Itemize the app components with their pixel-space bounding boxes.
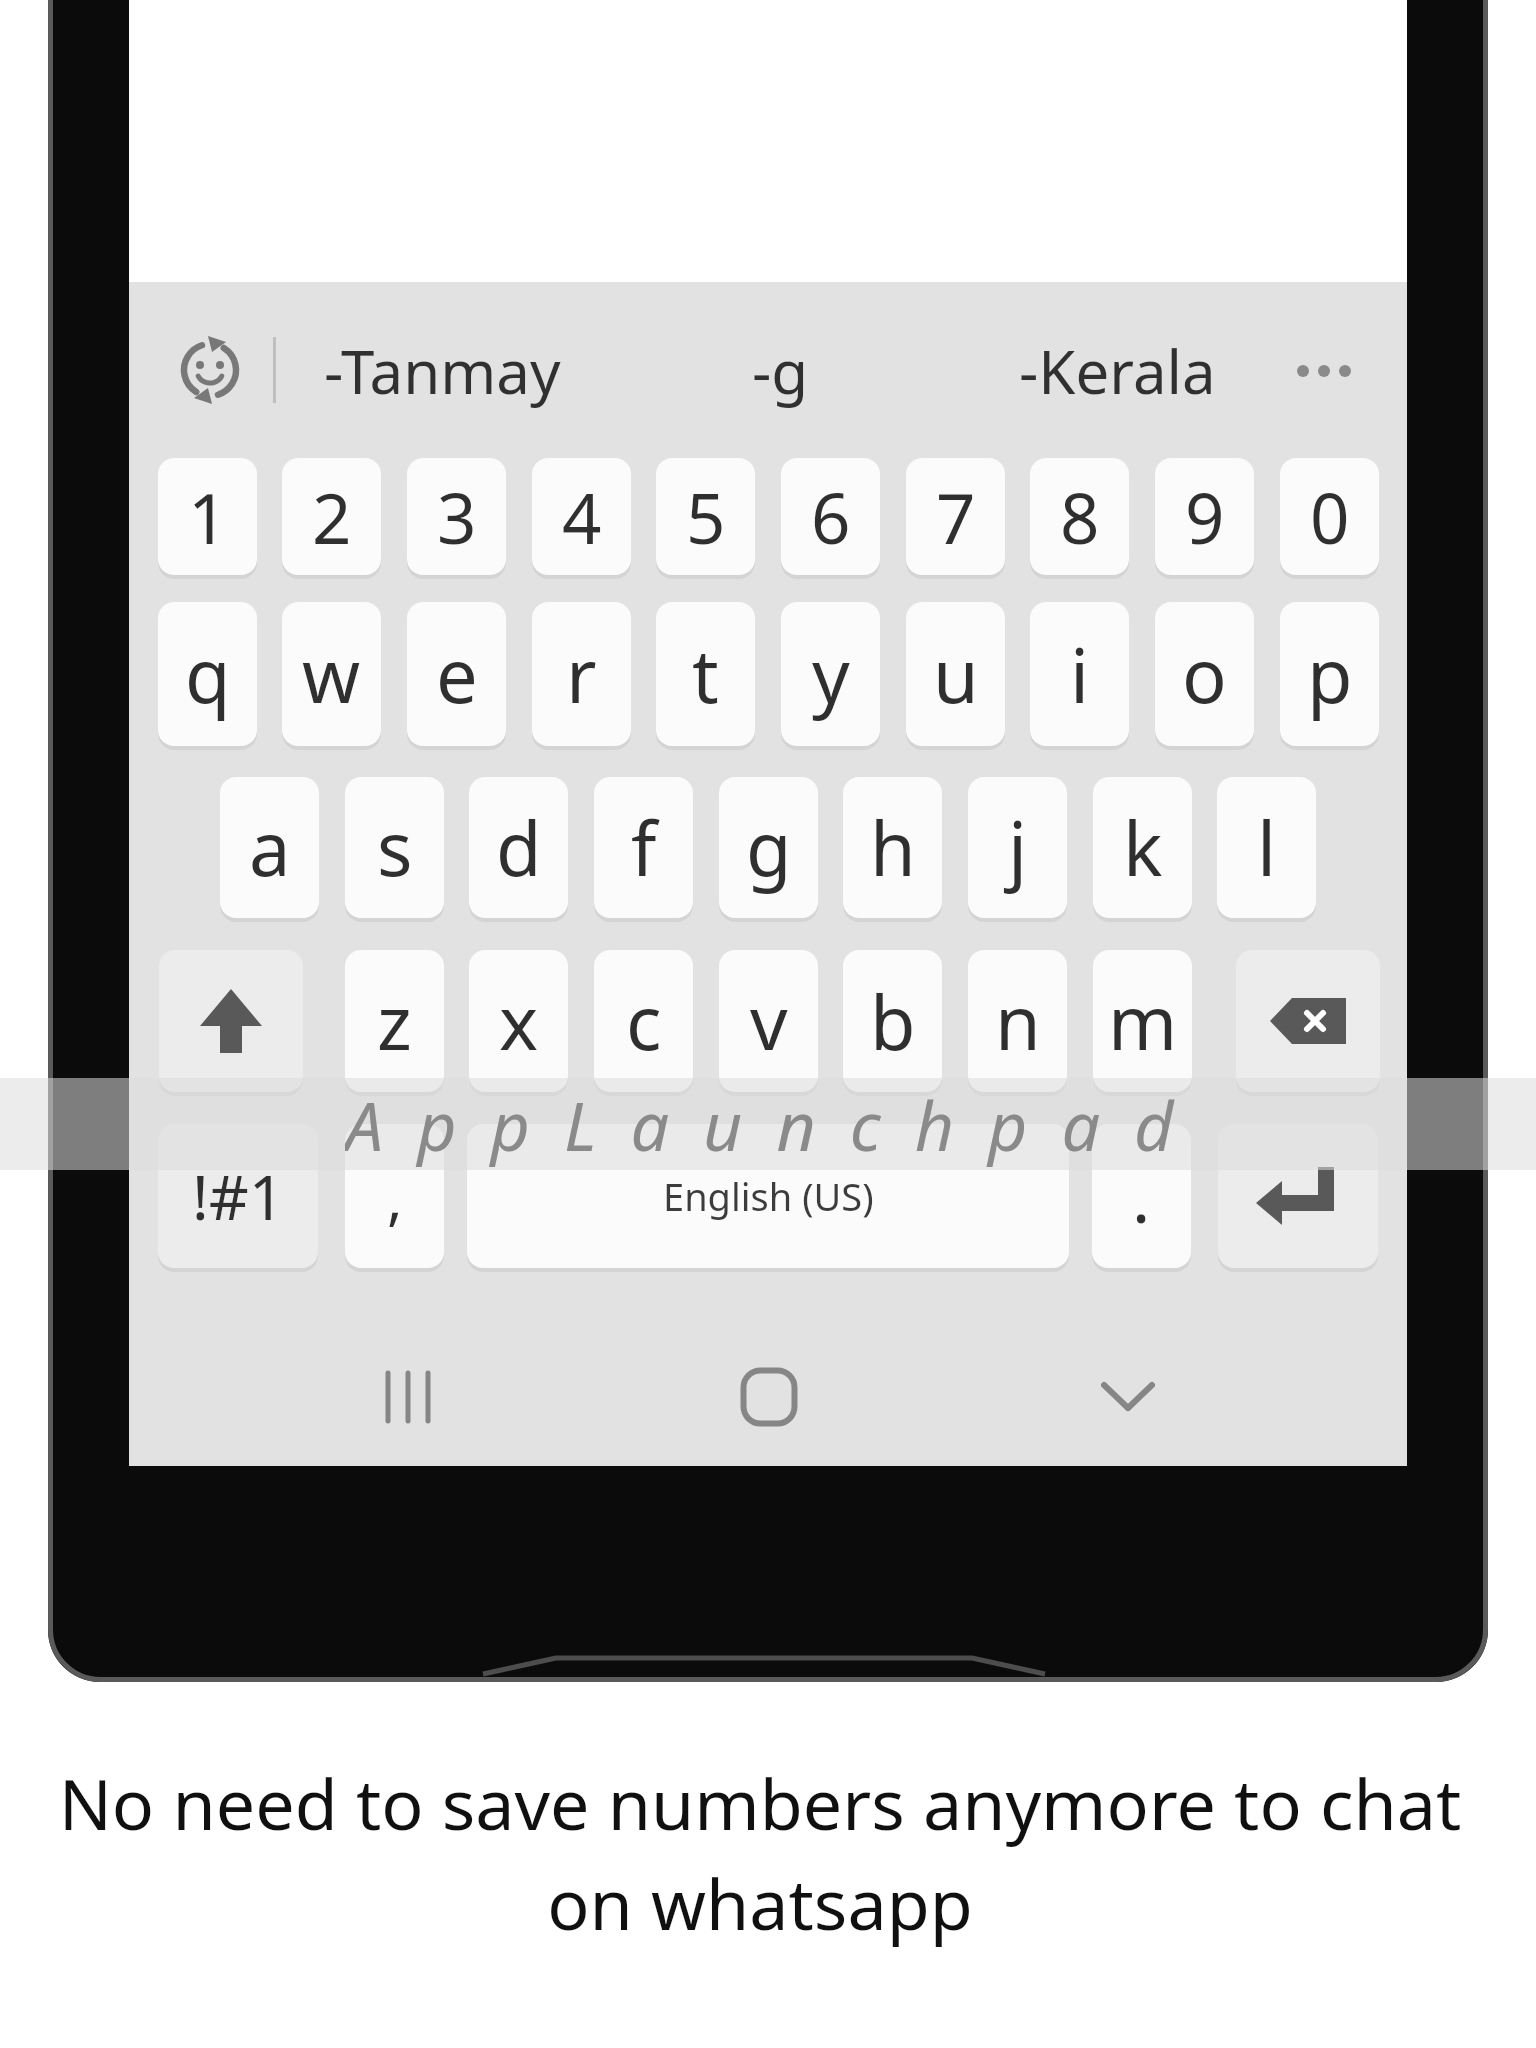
button[interactable]: 3 — [407, 458, 506, 575]
staticText: z — [377, 971, 412, 1072]
button[interactable]: f — [594, 777, 693, 918]
staticText: 1 — [188, 470, 228, 564]
staticText: n — [995, 971, 1041, 1072]
staticText: c — [626, 971, 662, 1072]
button[interactable]: 7 — [906, 458, 1005, 575]
button[interactable]: 9 — [1155, 458, 1254, 575]
staticText: v — [750, 971, 788, 1072]
staticText: y — [812, 624, 850, 725]
button[interactable]: 6 — [781, 458, 880, 575]
staticText: i — [1070, 624, 1090, 725]
staticText: 6 — [811, 470, 851, 564]
staticText: f — [631, 797, 657, 898]
staticText: l — [1257, 797, 1277, 898]
button[interactable]: p — [1280, 602, 1379, 746]
staticText: 2 — [312, 470, 352, 564]
button[interactable]: g — [719, 777, 818, 918]
staticText: , — [387, 1157, 403, 1236]
button[interactable] — [1068, 1347, 1188, 1447]
button[interactable]: t — [656, 602, 755, 746]
staticText: a — [249, 797, 291, 898]
button[interactable]: z — [345, 950, 444, 1092]
button[interactable] — [1236, 950, 1380, 1092]
button[interactable]: d — [469, 777, 568, 918]
button[interactable] — [348, 1347, 468, 1447]
button[interactable]: y — [781, 602, 880, 746]
staticText: q — [185, 624, 231, 725]
button[interactable] — [168, 328, 252, 412]
staticText: 4 — [562, 470, 602, 564]
button[interactable]: English (US) — [467, 1124, 1069, 1268]
staticText: -Kerala — [1019, 330, 1216, 412]
button[interactable]: h — [843, 777, 942, 918]
staticText: No need to save numbers anymore to chat — [0, 1755, 1528, 1850]
staticText: -g — [752, 330, 809, 412]
button[interactable]: l — [1217, 777, 1316, 918]
staticText: h — [870, 797, 916, 898]
button[interactable]: q — [158, 602, 257, 746]
button[interactable]: n — [968, 950, 1067, 1092]
button[interactable]: b — [843, 950, 942, 1092]
staticText: j — [1008, 797, 1028, 898]
staticText: 9 — [1185, 470, 1225, 564]
staticText: s — [377, 797, 413, 898]
staticText: e — [436, 624, 478, 725]
button[interactable]: !#1 — [158, 1124, 318, 1268]
staticText: . — [1132, 1150, 1151, 1243]
staticText: d — [496, 797, 542, 898]
button[interactable]: s — [345, 777, 444, 918]
button[interactable]: u — [906, 602, 1005, 746]
button[interactable]: 1 — [158, 458, 257, 575]
button[interactable]: m — [1093, 950, 1192, 1092]
staticText: u — [933, 624, 979, 725]
staticText: 3 — [437, 470, 477, 564]
staticText: k — [1123, 797, 1163, 898]
button[interactable]: v — [719, 950, 818, 1092]
staticText: o — [1182, 624, 1227, 725]
button[interactable]: c — [594, 950, 693, 1092]
button[interactable]: e — [407, 602, 506, 746]
button[interactable]: 8 — [1030, 458, 1129, 575]
staticText: AppLaunchpad — [345, 1078, 1208, 1170]
button[interactable]: 2 — [282, 458, 381, 575]
staticText: p — [1307, 624, 1353, 725]
staticText: English (US) — [663, 1170, 874, 1222]
button[interactable]: w — [282, 602, 381, 746]
staticText: 5 — [686, 470, 726, 564]
button[interactable] — [709, 1347, 829, 1447]
button[interactable]: o — [1155, 602, 1254, 746]
button[interactable]: 4 — [532, 458, 631, 575]
staticText: 0 — [1310, 470, 1350, 564]
button[interactable]: j — [968, 777, 1067, 918]
button[interactable]: -Tanmay — [300, 330, 584, 412]
staticText: on whatsapp — [0, 1855, 1528, 1950]
button[interactable]: k — [1093, 777, 1192, 918]
button[interactable]: a — [220, 777, 319, 918]
staticText: 8 — [1060, 470, 1100, 564]
button[interactable] — [159, 950, 303, 1092]
button[interactable]: , — [345, 1124, 444, 1268]
staticText: w — [302, 624, 361, 725]
staticText: b — [870, 971, 916, 1072]
staticText: !#1 — [192, 1154, 285, 1238]
staticText: g — [746, 797, 792, 898]
button[interactable]: i — [1030, 602, 1129, 746]
button[interactable]: x — [469, 950, 568, 1092]
button[interactable]: -Kerala — [977, 330, 1257, 412]
staticText: m — [1108, 971, 1178, 1072]
staticText: -Tanmay — [324, 330, 561, 412]
button[interactable]: . — [1092, 1124, 1191, 1268]
button[interactable] — [1274, 331, 1374, 411]
staticText: t — [692, 624, 719, 725]
button[interactable]: -g — [640, 330, 920, 412]
button[interactable]: r — [532, 602, 631, 746]
button[interactable] — [1218, 1124, 1378, 1268]
staticText: x — [499, 971, 539, 1072]
button[interactable]: 0 — [1280, 458, 1379, 575]
button[interactable]: 5 — [656, 458, 755, 575]
staticText: 7 — [936, 470, 976, 564]
staticText: r — [566, 624, 597, 725]
